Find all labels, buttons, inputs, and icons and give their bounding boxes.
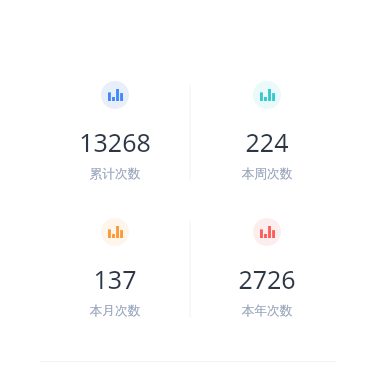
button[interactable]: 本周次数 (191, 61, 343, 198)
staticText: 137 (39, 262, 191, 296)
staticText: 224 (191, 125, 343, 159)
button[interactable]: 本月次数 (39, 198, 191, 335)
other: 本月次数 (101, 218, 129, 246)
staticText: 本月次数 (39, 303, 191, 319)
staticText: 2726 (191, 262, 343, 296)
button[interactable]: 累计次数 (39, 61, 191, 198)
other: 累计次数 (101, 81, 129, 109)
staticText: 累计次数 (39, 166, 191, 182)
other: 本周次数 (253, 81, 281, 109)
staticText: 13268 (39, 125, 191, 159)
staticText: 本周次数 (191, 166, 343, 182)
staticText: 本年次数 (191, 303, 343, 319)
button[interactable]: 本年次数 (191, 198, 343, 335)
other: 本年次数 (253, 218, 281, 246)
